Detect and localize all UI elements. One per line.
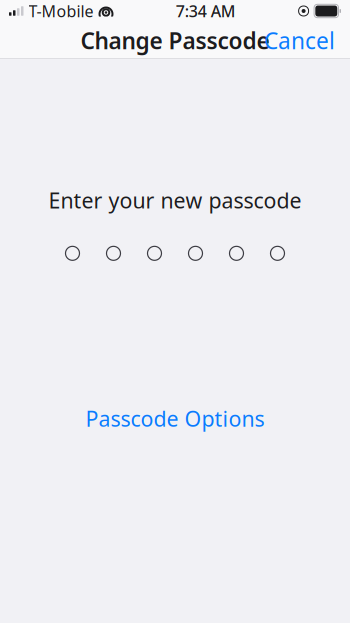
staticText: Enter your new passcode (48, 186, 301, 214)
staticText: Cancel (264, 25, 335, 55)
staticText: 7:34 AM (176, 0, 236, 22)
staticText: T-Mobile (28, 0, 93, 22)
staticText: Change Passcode (80, 25, 269, 55)
button[interactable]: Cancel (256, 19, 343, 61)
staticText: Passcode Options (85, 404, 264, 433)
button[interactable]: Passcode Options (71, 396, 278, 441)
